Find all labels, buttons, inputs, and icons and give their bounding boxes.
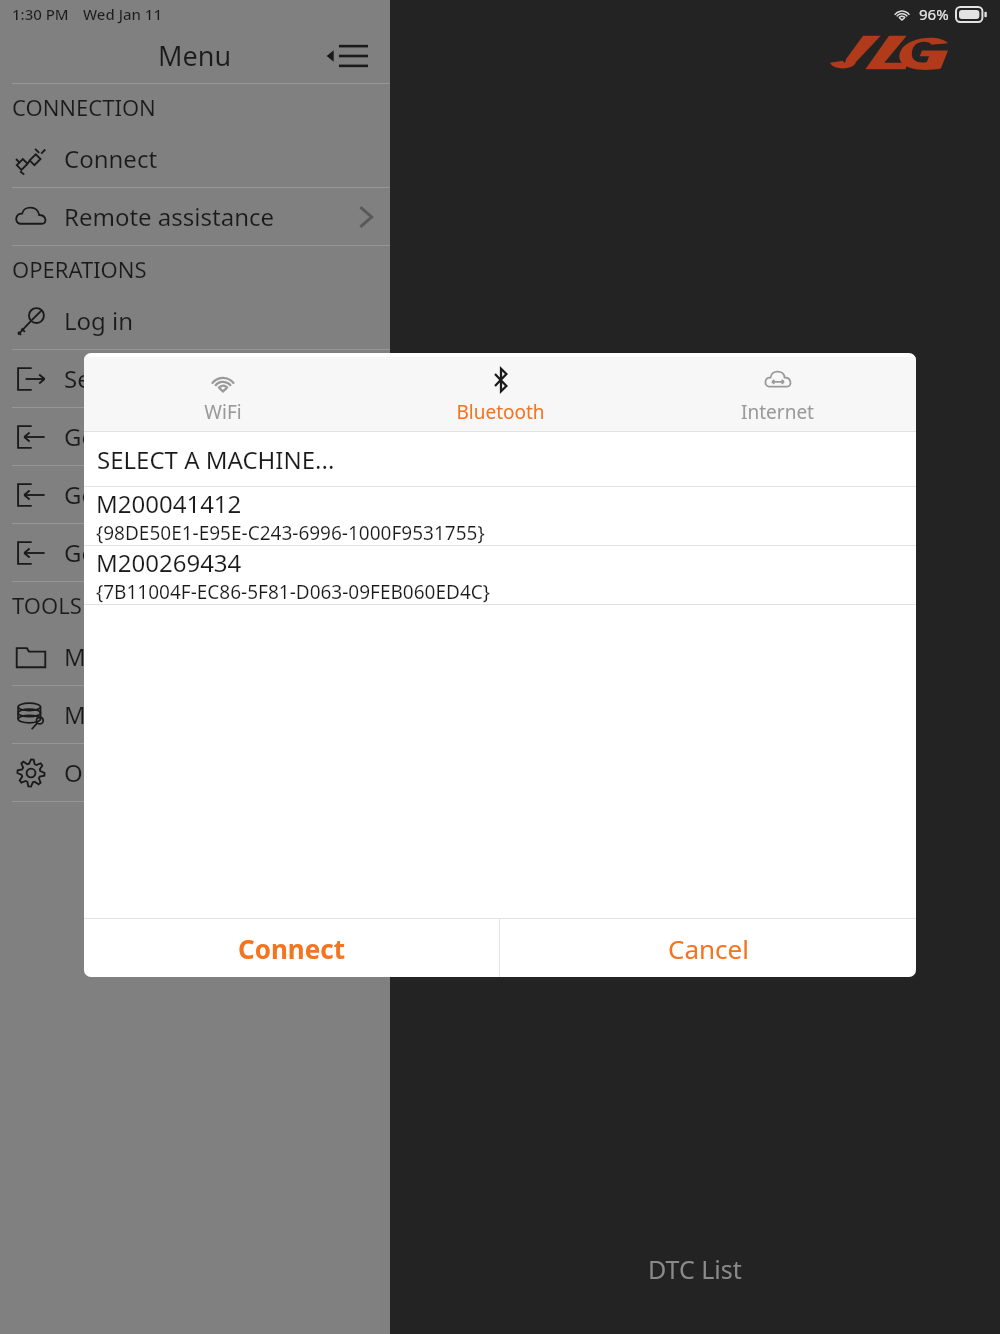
- button[interactable]: Manage data: [0, 686, 390, 743]
- staticText: Internet: [741, 399, 814, 425]
- staticText: OPERATIONS: [12, 254, 147, 284]
- button[interactable]: Bluetooth: [362, 357, 639, 432]
- button[interactable]: Connect: [0, 130, 390, 187]
- staticText: Remote assistance: [64, 200, 275, 233]
- button[interactable]: Toggle menu: [320, 36, 372, 76]
- staticText: M200041412: [96, 487, 242, 520]
- button[interactable]: DTC List: [390, 1252, 1000, 1286]
- staticText: SELECT A MACHINE...: [97, 443, 335, 476]
- staticText: TOOLS: [12, 590, 82, 620]
- button[interactable]: Set values: [0, 350, 390, 407]
- staticText: 96%: [919, 4, 949, 24]
- button[interactable]: Get machine info: [0, 524, 390, 581]
- staticText: Connect: [64, 142, 158, 175]
- staticText: Menu: [158, 37, 232, 74]
- button[interactable]: Connect: [84, 919, 499, 977]
- staticText: CONNECTION: [12, 92, 156, 122]
- staticText: Bluetooth: [456, 399, 545, 425]
- staticText: Wed Jan 11: [83, 4, 163, 24]
- other: JLG: [830, 34, 948, 70]
- staticText: Manage files: [64, 640, 208, 673]
- button[interactable]: WiFi: [84, 357, 362, 432]
- button[interactable]: M200269434: [84, 546, 916, 604]
- staticText: Options: [64, 756, 154, 789]
- staticText: M200269434: [96, 546, 242, 579]
- button[interactable]: Options: [0, 744, 390, 801]
- staticText: {7B11004F-EC86-5F81-D063-09FEB060ED4C}: [96, 579, 491, 604]
- staticText: Get machine info: [64, 536, 257, 569]
- staticText: {98DE50E1-E95E-C243-6996-1000F9531755}: [96, 520, 485, 545]
- staticText: Manage data: [64, 698, 213, 731]
- button[interactable]: Get history: [0, 466, 390, 523]
- staticText: Connect: [238, 931, 345, 966]
- button[interactable]: M200041412: [84, 487, 916, 545]
- staticText: Get history: [64, 478, 188, 511]
- button[interactable]: Remote assistance: [0, 188, 390, 245]
- staticText: WiFi: [204, 399, 242, 425]
- staticText: DTC List: [648, 1252, 742, 1286]
- staticText: Set values: [64, 362, 178, 395]
- button[interactable]: Internet: [639, 357, 916, 432]
- button[interactable]: Get values: [0, 408, 390, 465]
- button[interactable]: Log in: [0, 292, 390, 349]
- staticText: Get values: [64, 420, 182, 453]
- button[interactable]: Manage files: [0, 628, 390, 685]
- staticText: Log in: [64, 304, 134, 337]
- button[interactable]: Cancel: [500, 919, 916, 977]
- staticText: 1:30 PM: [12, 4, 69, 24]
- staticText: Cancel: [668, 931, 749, 966]
